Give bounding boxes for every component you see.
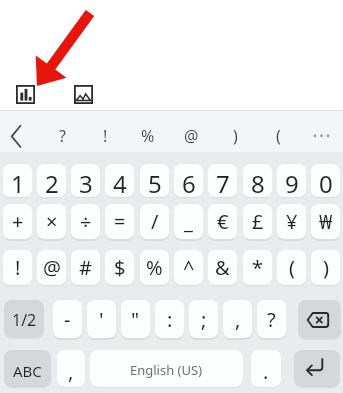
staticText: )	[323, 254, 329, 281]
button[interactable]: 8	[243, 164, 272, 197]
button[interactable]: #	[71, 250, 100, 285]
staticText: 5	[148, 167, 162, 197]
button[interactable]: 6	[174, 164, 203, 197]
staticText: *	[252, 254, 264, 281]
button[interactable]: /	[140, 204, 169, 239]
button[interactable]: )	[221, 122, 249, 150]
button[interactable]: ,	[223, 300, 252, 338]
button[interactable]: "	[121, 300, 150, 338]
button[interactable]: ?	[48, 122, 76, 150]
button[interactable]: €	[208, 204, 237, 239]
button[interactable]: !	[3, 250, 32, 285]
staticText: '	[99, 306, 104, 333]
button[interactable]: (	[277, 250, 306, 285]
button[interactable]	[308, 122, 336, 150]
staticText: 4	[113, 167, 127, 197]
button[interactable]	[74, 85, 93, 104]
staticText: ^	[183, 254, 195, 281]
staticText: ×	[46, 208, 58, 235]
staticText: !	[103, 125, 108, 147]
staticText: @	[43, 254, 61, 281]
button[interactable]: .	[251, 350, 281, 387]
staticText: 6	[182, 167, 196, 197]
staticText: £	[252, 208, 264, 235]
staticText: 9	[285, 167, 299, 197]
button[interactable]: @	[177, 122, 205, 150]
button[interactable]: %	[134, 122, 162, 150]
button[interactable]: 4	[105, 164, 134, 197]
staticText: 0	[319, 167, 333, 197]
staticText: 1	[11, 167, 25, 197]
button[interactable]: ×	[37, 204, 66, 239]
staticText: 8	[251, 167, 265, 197]
staticText: ;	[201, 306, 207, 333]
button[interactable]: %	[140, 250, 169, 285]
staticText: .	[263, 358, 269, 385]
button[interactable]	[6, 124, 28, 148]
button[interactable]: *	[243, 250, 272, 285]
button[interactable]: )	[311, 250, 340, 285]
button[interactable]: 0	[311, 164, 340, 197]
button[interactable]: (	[264, 122, 292, 150]
button[interactable]: ₩	[311, 204, 340, 239]
staticText: =	[114, 208, 126, 235]
button[interactable]: =	[105, 204, 134, 239]
staticText: +	[12, 208, 24, 235]
staticText: @	[184, 125, 199, 147]
button[interactable]: 1/2	[4, 300, 44, 337]
staticText: ₩	[319, 208, 333, 235]
button[interactable]: '	[87, 300, 116, 338]
button[interactable]: ;	[189, 300, 218, 338]
button[interactable]: ^	[174, 250, 203, 285]
button[interactable]: £	[243, 204, 272, 239]
staticText: "	[131, 306, 140, 333]
button[interactable]: +	[3, 204, 32, 239]
staticText: 3	[79, 167, 93, 197]
button[interactable]: :	[155, 300, 184, 338]
staticText: %	[141, 125, 155, 147]
staticText: ?	[59, 125, 66, 147]
staticText: ,	[68, 358, 74, 385]
button[interactable]: !	[91, 122, 119, 150]
staticText: /	[151, 208, 159, 235]
button[interactable]: -	[53, 300, 82, 338]
button[interactable]: 7	[208, 164, 237, 197]
button[interactable]: _	[174, 204, 203, 239]
button[interactable]: ¥	[277, 204, 306, 239]
staticText: (	[289, 254, 295, 281]
button[interactable]: 1	[3, 164, 32, 197]
button[interactable]: ÷	[71, 204, 100, 239]
button[interactable]: ?	[257, 300, 286, 338]
staticText: 1/2	[12, 309, 37, 331]
staticText: %	[146, 254, 163, 281]
button[interactable]: 2	[37, 164, 66, 197]
staticText: )	[233, 125, 238, 147]
staticText: _	[184, 208, 193, 235]
button[interactable]: @	[37, 250, 66, 285]
button[interactable]	[16, 85, 35, 104]
button[interactable]	[298, 300, 341, 338]
staticText: ¥	[286, 208, 298, 235]
button[interactable]: &	[208, 250, 237, 285]
staticText: ?	[267, 306, 276, 333]
staticText: English (US)	[130, 361, 203, 379]
button[interactable]: $	[105, 250, 134, 285]
staticText: ÷	[80, 208, 92, 235]
button[interactable]: ,	[57, 350, 85, 387]
staticText: (	[276, 125, 281, 147]
staticText: €	[217, 208, 229, 235]
staticText: :	[167, 306, 173, 333]
staticText: ABC	[13, 361, 42, 381]
button[interactable]: 5	[140, 164, 169, 197]
staticText: !	[15, 254, 21, 281]
staticText: $	[114, 254, 126, 281]
button[interactable]: English (US)	[90, 350, 243, 387]
button[interactable]: 9	[277, 164, 306, 197]
staticText: 7	[216, 167, 230, 197]
button[interactable]: ABC	[4, 350, 51, 387]
staticText: #	[79, 254, 92, 281]
button[interactable]	[294, 350, 340, 387]
button[interactable]: 3	[71, 164, 100, 197]
staticText: 2	[45, 167, 59, 197]
staticText: &	[215, 254, 230, 281]
